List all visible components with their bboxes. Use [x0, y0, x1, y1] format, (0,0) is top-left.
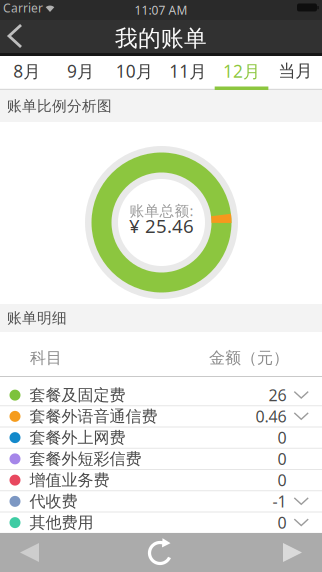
staticText: 0.46	[255, 406, 286, 427]
button[interactable]: 代收费	[0, 491, 322, 512]
button[interactable]	[268, 542, 322, 563]
button[interactable]: 11月	[161, 56, 215, 86]
button[interactable]	[0, 22, 34, 50]
button[interactable]: 套餐及固定费	[0, 385, 322, 406]
button[interactable]	[139, 536, 183, 569]
staticText: 增值业务费	[29, 470, 109, 490]
button[interactable]: 8月	[0, 56, 54, 86]
button[interactable]: 其他费用	[0, 512, 322, 534]
button[interactable]: 套餐外短彩信费	[0, 449, 322, 470]
staticText: 账单比例分析图	[7, 97, 112, 115]
staticText: 我的账单	[115, 25, 207, 52]
staticText: 套餐外语音通信费	[29, 406, 157, 426]
staticText: 代收费	[29, 491, 77, 511]
staticText: 9月	[67, 59, 94, 82]
staticText: 11月	[169, 59, 206, 82]
staticText: 26	[268, 384, 286, 406]
staticText: 套餐外上网费	[29, 428, 125, 447]
staticText: 当月	[278, 60, 312, 82]
button[interactable]: 套餐外上网费	[0, 427, 322, 449]
button[interactable]: 增值业务费	[0, 470, 322, 491]
staticText: 账单总额:	[129, 201, 193, 220]
staticText: 0	[277, 448, 286, 469]
staticText: 套餐外短彩信费	[29, 449, 141, 469]
staticText: 11:07 AM	[134, 2, 187, 18]
staticText: ¥ 25.46	[129, 213, 194, 238]
staticText: 8月	[13, 59, 40, 82]
button[interactable]: 10月	[107, 56, 161, 86]
staticText: 套餐及固定费	[29, 385, 125, 405]
staticText: 科目	[30, 348, 62, 368]
staticText: -1	[272, 491, 286, 512]
staticText: 0	[277, 512, 286, 533]
button[interactable]: 12月	[215, 56, 268, 86]
button[interactable]: 9月	[54, 56, 107, 86]
staticText: 账单明细	[7, 309, 67, 327]
staticText: 12月	[223, 59, 260, 82]
staticText: 0	[277, 469, 286, 491]
staticText: 金额（元）	[209, 348, 289, 368]
staticText: 其他费用	[29, 513, 93, 532]
button[interactable]: 当月	[268, 56, 322, 86]
staticText: 10月	[116, 59, 153, 82]
staticText: Carrier	[3, 0, 43, 16]
staticText: 0	[277, 427, 286, 448]
button[interactable]	[0, 542, 54, 563]
button[interactable]: 套餐外语音通信费	[0, 406, 322, 427]
